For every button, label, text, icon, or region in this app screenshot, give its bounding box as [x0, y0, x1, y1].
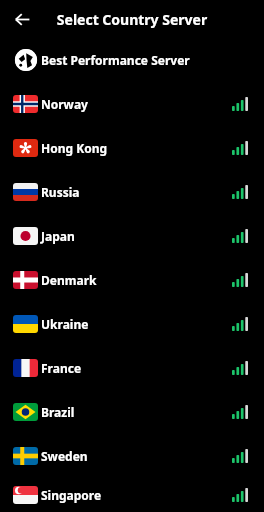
button[interactable]: Russia — [0, 170, 264, 214]
staticText: Brazil — [41, 404, 75, 420]
staticText: Sweden — [41, 448, 88, 464]
button[interactable]: Hong Kong — [0, 126, 264, 170]
staticText: Ukraine — [41, 316, 89, 332]
button[interactable]: Norway — [0, 82, 264, 126]
staticText: Best Performance Server — [41, 52, 190, 68]
staticText: Singapore — [41, 487, 102, 503]
button[interactable]: Sweden — [0, 434, 264, 478]
button[interactable]: France — [0, 346, 264, 390]
button[interactable]: Best Performance Server — [0, 38, 264, 82]
staticText: Hong Kong — [41, 140, 108, 156]
button[interactable]: Singapore — [0, 478, 264, 512]
staticText: Denmark — [41, 272, 97, 288]
staticText: Japan — [41, 228, 75, 244]
button[interactable]: Japan — [0, 214, 264, 258]
staticText: Norway — [41, 96, 88, 112]
button[interactable]: Brazil — [0, 390, 264, 434]
staticText: Select Country Server — [0, 10, 264, 29]
staticText: Russia — [41, 184, 80, 200]
staticText: France — [41, 360, 82, 376]
button[interactable]: Back — [8, 5, 36, 33]
button[interactable]: Denmark — [0, 258, 264, 302]
button[interactable]: Ukraine — [0, 302, 264, 346]
